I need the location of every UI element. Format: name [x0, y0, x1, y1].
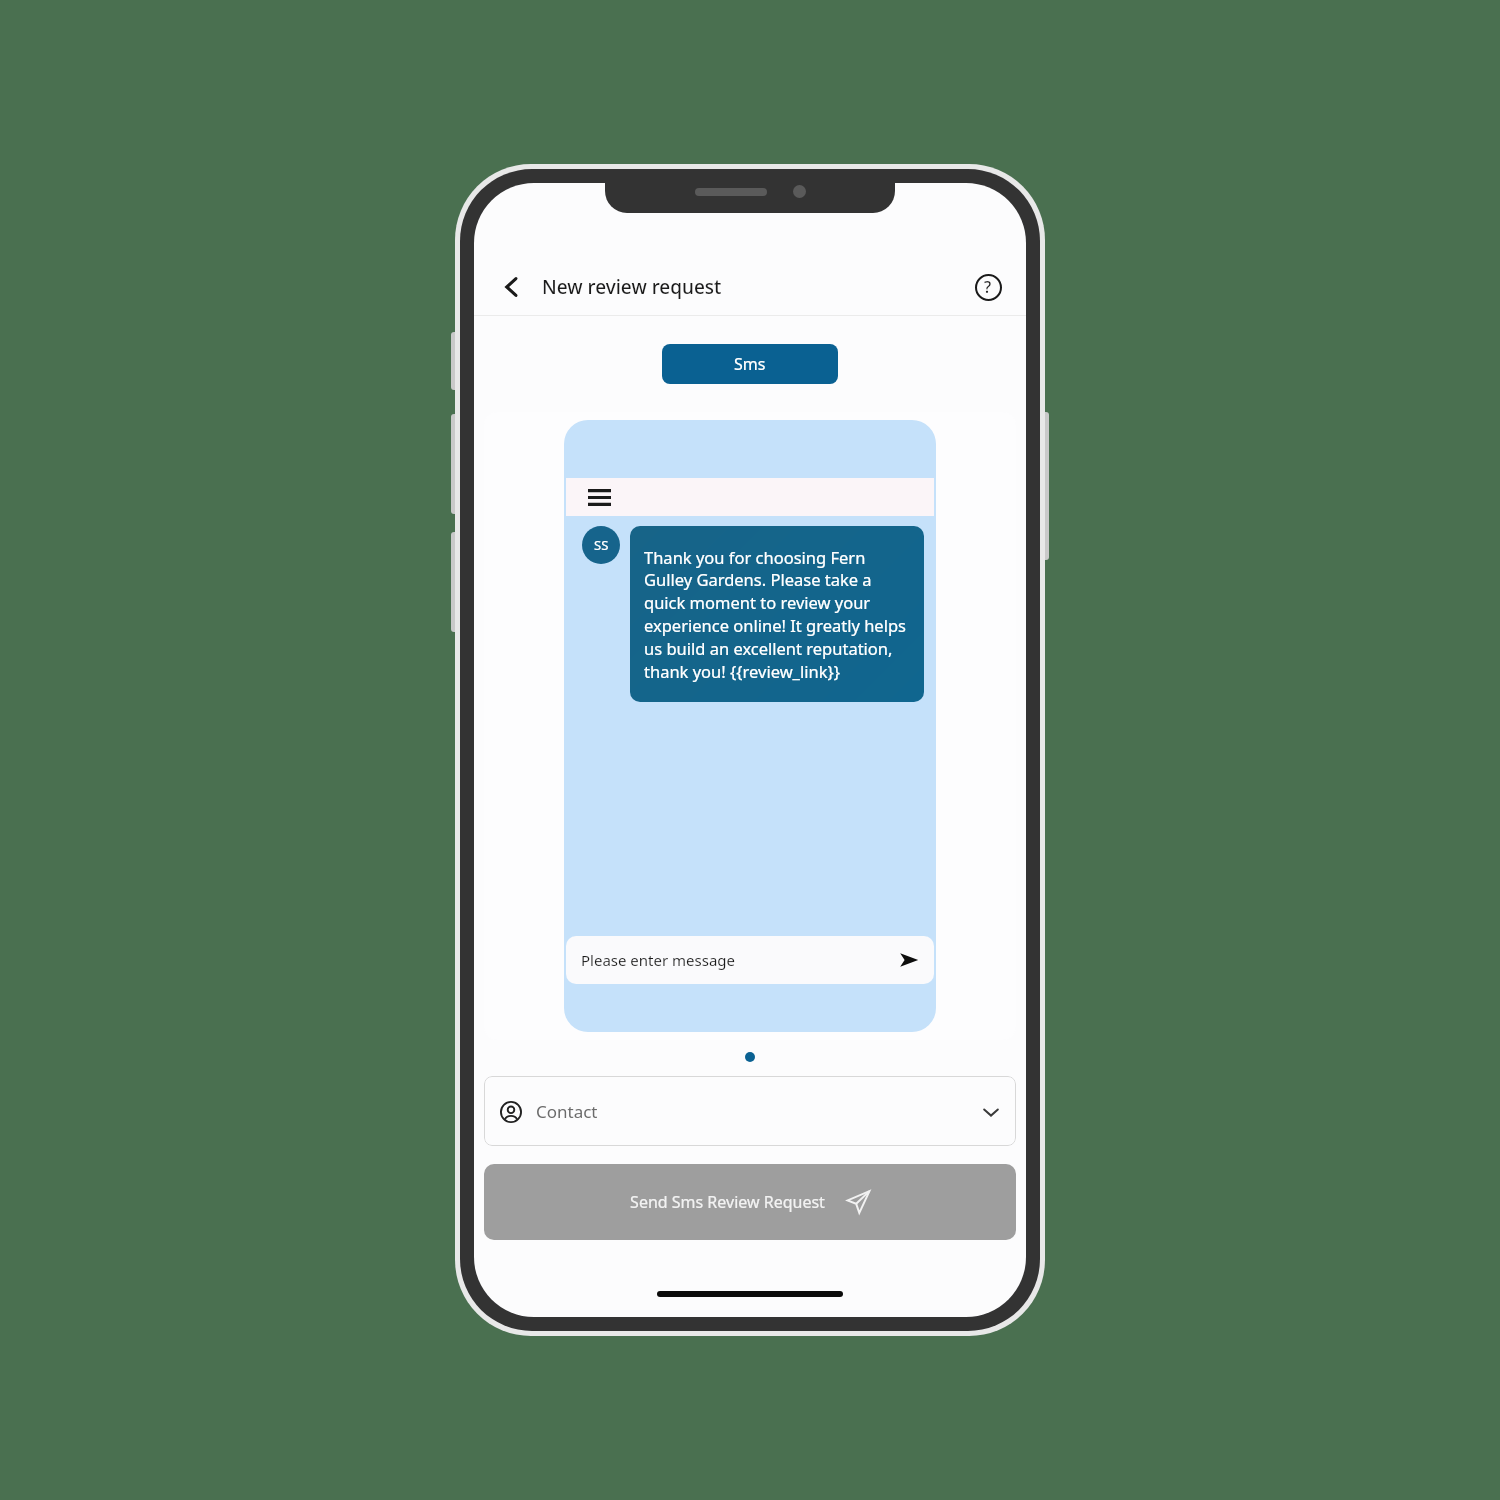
staticText: New review request: [542, 274, 722, 300]
staticText: Thank you for choosing Fern Gulley Garde…: [644, 546, 910, 682]
button[interactable]: Please enter message: [566, 936, 934, 984]
staticText: Sms: [734, 353, 766, 375]
button[interactable]: Contact: [484, 1076, 1016, 1146]
staticText: Please enter message: [581, 950, 736, 970]
button[interactable]: Send Sms Review Request: [484, 1164, 1016, 1240]
button[interactable]: SS: [484, 412, 1016, 1040]
button[interactable]: Back: [492, 267, 532, 307]
staticText: SS: [594, 536, 609, 554]
other: Send: [899, 950, 919, 970]
staticText: Send Sms Review Request: [630, 1191, 825, 1213]
button[interactable]: Help: [968, 267, 1008, 307]
staticText: Contact: [536, 1100, 598, 1123]
button[interactable]: Sms: [662, 344, 838, 384]
staticText: ?: [984, 276, 992, 298]
